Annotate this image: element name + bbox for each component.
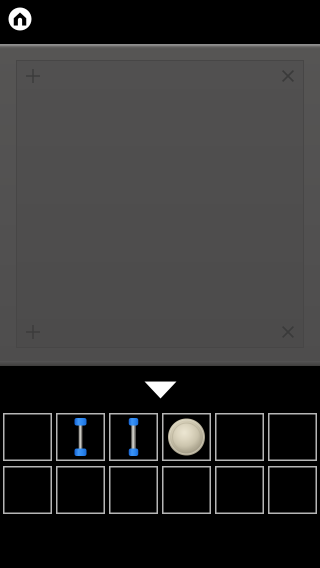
button[interactable]: Move forward [136,370,184,410]
button[interactable]: Empty slot [109,466,158,514]
button[interactable]: Blue bolt [109,413,158,461]
button[interactable]: Silver coin [162,413,211,461]
button[interactable]: Empty slot [3,466,52,514]
button[interactable]: Examine bottom right [273,317,303,347]
button[interactable]: Empty slot [268,466,317,514]
button[interactable]: Empty slot [268,413,317,461]
button[interactable]: Empty slot [215,413,264,461]
button[interactable]: Home [0,0,40,38]
button[interactable]: Examine top left [18,61,48,91]
button[interactable]: Empty slot [3,413,52,461]
button[interactable]: Empty slot [56,466,105,514]
button[interactable]: Empty slot [215,466,264,514]
button[interactable]: Empty slot [162,466,211,514]
button[interactable]: Blue bolt [56,413,105,461]
button[interactable]: Examine top right [273,61,303,91]
